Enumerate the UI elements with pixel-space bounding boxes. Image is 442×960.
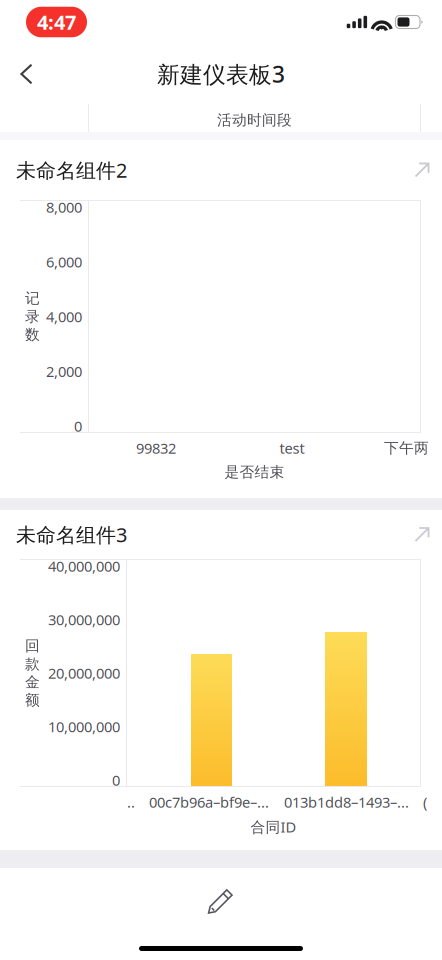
staticText: 10,000,000 (48, 717, 120, 736)
staticText: 013b1dd8–1493–... (284, 792, 409, 812)
staticText: 99832 (136, 438, 176, 458)
staticText: 合同ID (250, 817, 296, 836)
staticText: 下午两 (384, 439, 429, 457)
staticText: 0 (112, 770, 120, 790)
staticText: 新建仪表板3 (157, 59, 285, 89)
staticText: 00c7b96a–bf9e–... (149, 792, 269, 812)
button[interactable]: Expand (402, 149, 442, 191)
staticText: 录 (25, 307, 40, 325)
staticText: 活动时间段 (217, 111, 292, 129)
staticText: ( (423, 792, 427, 812)
staticText: 0 (74, 416, 82, 436)
button[interactable]: Expand (402, 513, 442, 555)
staticText: 额 (25, 691, 40, 709)
staticText: 是否结束 (224, 463, 284, 481)
staticText: test (279, 438, 304, 458)
staticText: .. (127, 792, 135, 812)
staticText: 款 (25, 655, 40, 673)
staticText: 记 (25, 289, 40, 307)
staticText: 2,000 (46, 361, 82, 381)
staticText: 数 (25, 325, 40, 343)
staticText: 未命名组件2 (16, 157, 127, 183)
staticText: 6,000 (46, 252, 82, 271)
staticText: 4,000 (46, 307, 82, 326)
staticText: 8,000 (46, 197, 82, 217)
staticText: 回 (25, 637, 40, 655)
staticText: 40,000,000 (48, 556, 120, 576)
staticText: 金 (25, 673, 40, 691)
button[interactable]: Back (0, 50, 49, 97)
staticText: 30,000,000 (48, 610, 120, 629)
button[interactable]: Edit (197, 878, 245, 922)
staticText: 4:47 (37, 9, 76, 35)
staticText: 20,000,000 (48, 663, 120, 683)
staticText: 未命名组件3 (16, 521, 127, 548)
